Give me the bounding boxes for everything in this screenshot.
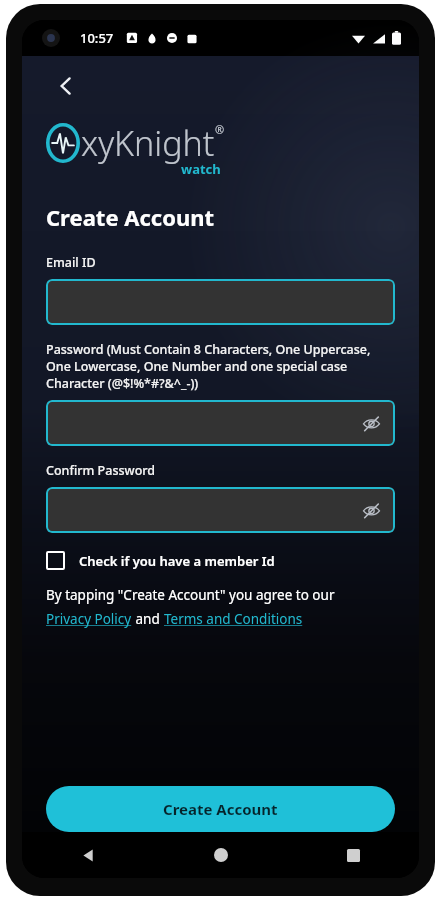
staticText: Password (Must Contain 8 Characters, One… — [46, 341, 395, 392]
staticText: 10:57 — [80, 29, 114, 47]
staticText: Email ID — [46, 254, 96, 271]
staticText: xyKnight — [81, 120, 215, 166]
button[interactable]: Back — [46, 66, 86, 106]
staticText: Confirm Password — [46, 462, 156, 479]
button[interactable]: Show password — [46, 487, 395, 533]
button[interactable]: Check if you have a member Id — [46, 551, 395, 570]
button[interactable]: Show password — [359, 498, 383, 522]
button[interactable]: Recent apps — [287, 832, 419, 878]
staticText: Create Account — [46, 202, 215, 232]
button[interactable] — [46, 279, 395, 325]
staticText: watch — [181, 160, 221, 178]
button[interactable]: Show password — [46, 400, 395, 446]
button[interactable]: Home — [155, 832, 287, 878]
button[interactable]: Privacy Policy — [46, 610, 132, 628]
button[interactable]: Create Account — [46, 786, 395, 832]
staticText: By tapping "Create Account" you agree to… — [46, 586, 335, 604]
staticText: Create Account — [163, 799, 278, 819]
staticText: Check if you have a member Id — [79, 552, 275, 570]
button[interactable]: Terms and Conditions — [164, 610, 303, 628]
staticText: and — [132, 610, 164, 628]
button[interactable]: Show password — [359, 411, 383, 435]
staticText: Privacy Policy — [46, 610, 132, 628]
staticText: Terms and Conditions — [164, 610, 303, 628]
button[interactable]: Back — [22, 832, 155, 878]
staticText: ® — [215, 122, 225, 137]
